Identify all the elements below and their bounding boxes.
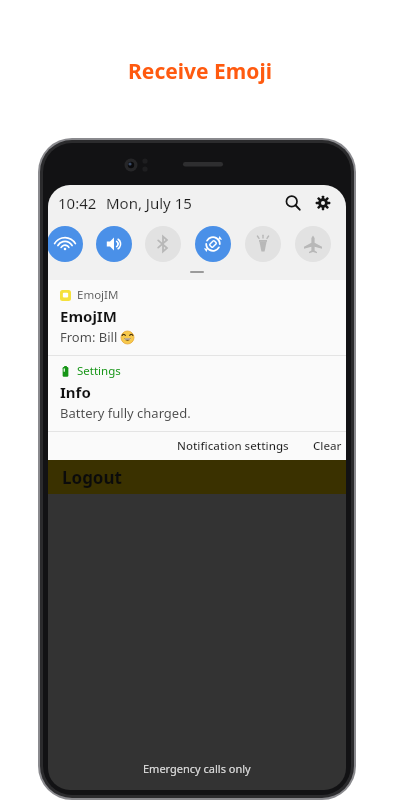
button[interactable]: Clear — [309, 434, 346, 458]
staticText: Info — [60, 382, 91, 402]
button[interactable]: Quick setting — [295, 226, 331, 262]
button[interactable]: Quick setting — [48, 226, 83, 262]
staticText: 10:42 — [58, 193, 97, 213]
staticText: Clear — [313, 438, 342, 454]
staticText: Emergency calls only — [143, 761, 251, 776]
staticText: EmojIM — [77, 287, 119, 303]
staticText: Mon, July 15 — [106, 193, 192, 213]
button[interactable]: Settings — [310, 190, 336, 216]
staticText: Settings — [77, 363, 121, 379]
staticText: Receive Emoji — [0, 57, 400, 86]
staticText: From: Bill — [60, 328, 121, 346]
staticText: EmojIM — [60, 306, 117, 326]
button[interactable]: Quick setting — [145, 226, 181, 262]
button[interactable]: Settings — [48, 356, 346, 431]
button[interactable]: Search — [280, 190, 306, 216]
button[interactable]: Quick setting — [96, 226, 132, 262]
button[interactable]: Quick setting — [245, 226, 281, 262]
staticText: Notification settings — [177, 438, 289, 454]
staticText: Battery fully charged. — [60, 404, 191, 422]
button[interactable]: EmojIM — [48, 280, 346, 355]
staticText: Logout — [62, 466, 122, 489]
button[interactable]: Notification settings — [171, 434, 295, 458]
button[interactable]: Quick setting — [195, 226, 231, 262]
button[interactable]: Logout — [48, 460, 346, 494]
